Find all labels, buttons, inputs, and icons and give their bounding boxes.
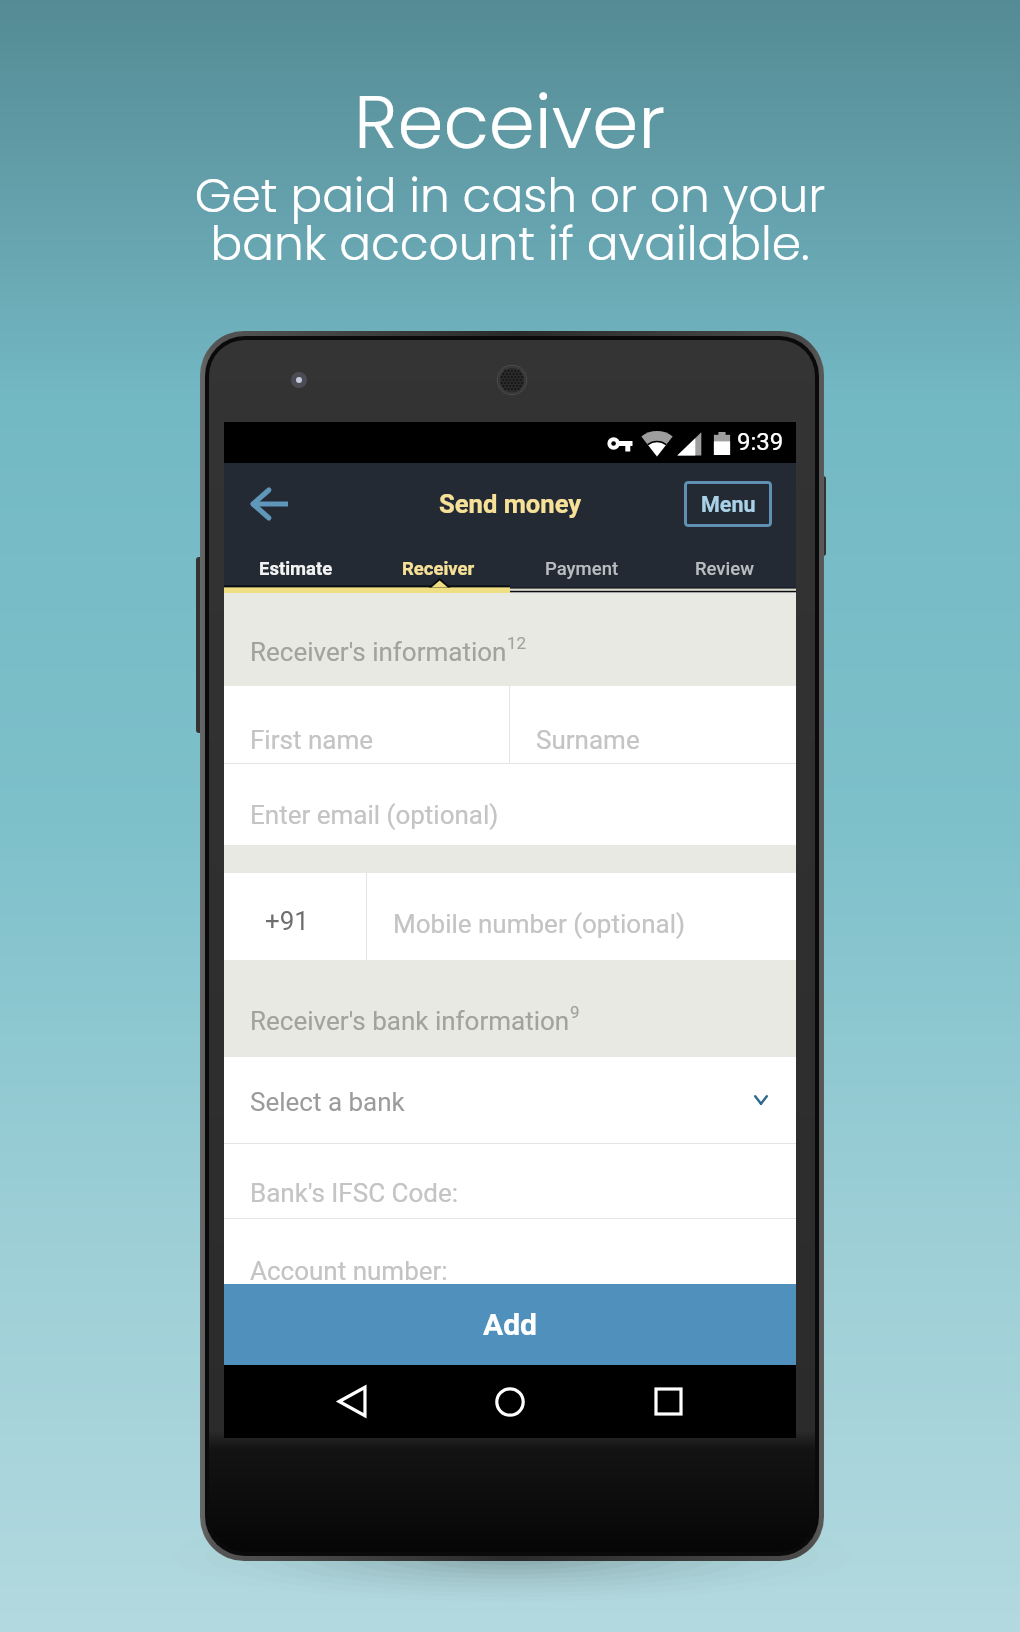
button[interactable]: Add [224, 1284, 796, 1365]
staticText: Mobile number (optional) [393, 909, 686, 939]
staticText: Select a bank [250, 1087, 405, 1117]
button[interactable]: Estimate [224, 544, 367, 577]
button[interactable]: Back [242, 476, 298, 532]
staticText: 9 [570, 1002, 580, 1022]
button[interactable]: Enter email (optional) [224, 764, 796, 845]
button[interactable]: Surname [510, 686, 796, 763]
button[interactable]: Review [653, 544, 796, 577]
button[interactable]: Mobile number (optional) [367, 873, 796, 960]
staticText: 12 [507, 633, 527, 653]
button[interactable]: Bank's IFSC Code: [224, 1144, 796, 1218]
button[interactable]: +91 [224, 873, 366, 960]
staticText: Menu [701, 492, 756, 517]
button[interactable]: Payment [510, 544, 653, 577]
button[interactable]: Menu [684, 481, 772, 527]
staticText: Enter email (optional) [250, 800, 499, 830]
staticText: First name [250, 725, 373, 755]
button[interactable]: Home [458, 1365, 562, 1438]
button[interactable]: Back [300, 1365, 404, 1438]
staticText: Receiver [354, 70, 666, 174]
staticText: Send money [439, 489, 582, 519]
button[interactable]: Select a bank [224, 1057, 796, 1143]
staticText: +91 [265, 906, 309, 936]
staticText: Receiver [402, 558, 475, 580]
button[interactable]: Receiver [367, 544, 510, 577]
staticText: Add [483, 1307, 538, 1342]
button[interactable]: Account number: [224, 1219, 796, 1309]
staticText: Account number: [250, 1256, 448, 1286]
staticText: Review [695, 558, 754, 580]
staticText: Estimate [259, 558, 333, 580]
button[interactable]: First name [224, 686, 509, 763]
staticText: Receiver's information [250, 637, 507, 667]
staticText: Surname [536, 725, 640, 755]
staticText: 9:39 [737, 428, 784, 456]
button[interactable]: Recents [616, 1365, 720, 1438]
staticText: Bank's IFSC Code: [250, 1178, 459, 1208]
staticText: Payment [545, 558, 619, 580]
staticText: Get paid in cash or on your bank account… [0, 163, 1020, 277]
staticText: Receiver's bank information [250, 1006, 570, 1036]
